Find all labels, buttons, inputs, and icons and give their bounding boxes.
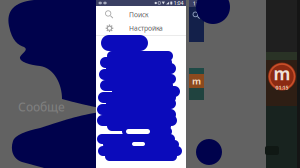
staticText: m [273,62,290,85]
button[interactable]: Search [189,7,204,19]
staticText: 1:04 [193,0,203,7]
staticText: m [192,75,201,87]
button[interactable]: Поиск [96,8,186,21]
staticText: 01:15 [275,84,288,91]
staticText: Сообще [18,99,65,115]
button[interactable]: Настройка [96,21,186,35]
staticText: Настройка [129,24,163,33]
staticText: Поиск [129,10,149,19]
staticText: 1:04 [173,0,183,7]
